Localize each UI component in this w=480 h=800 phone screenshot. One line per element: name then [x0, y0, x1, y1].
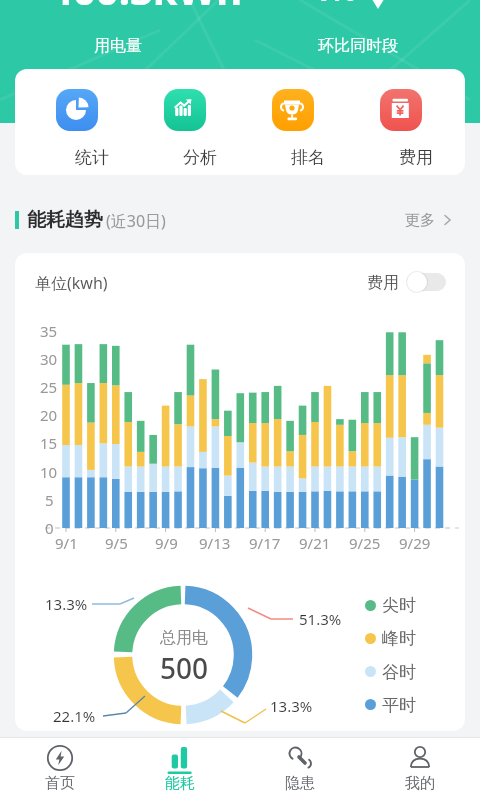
staticText: 我的 — [405, 774, 435, 793]
staticText: 首页 — [45, 774, 75, 793]
staticText: 平时 — [382, 695, 416, 716]
staticText: 9/1 — [55, 533, 78, 553]
button[interactable]: 更多 — [400, 206, 465, 234]
button[interactable] — [407, 273, 446, 291]
button[interactable]: 用电量 — [68, 33, 168, 59]
staticText: 分析 — [183, 147, 217, 168]
staticText: 10 — [40, 462, 58, 482]
button[interactable] — [380, 89, 422, 131]
staticText: 15 — [40, 433, 58, 453]
staticText: 9/29 — [399, 533, 431, 553]
staticText: 峰时 — [382, 628, 416, 649]
staticText: 隐患 — [285, 774, 315, 793]
staticText: 统计 — [75, 147, 109, 168]
staticText: 尖时 — [382, 595, 416, 616]
staticText: 9/5 — [105, 533, 128, 553]
staticText: 25 — [40, 377, 58, 397]
button[interactable] — [272, 89, 314, 131]
staticText: (近30日) — [106, 210, 166, 232]
staticText: 20 — [40, 405, 58, 425]
staticText: 22.1% — [53, 706, 96, 726]
staticText: 13.3% — [270, 696, 313, 716]
staticText: 9/13 — [199, 533, 231, 553]
staticText: 环比同时段 — [318, 36, 398, 56]
staticText: 用电量 — [94, 36, 142, 56]
staticText: 能耗趋势 — [27, 208, 103, 232]
button[interactable] — [164, 89, 206, 131]
staticText: 更多 — [405, 211, 435, 230]
staticText: 13.3% — [45, 594, 88, 614]
staticText: 9/17 — [249, 533, 281, 553]
staticText: 400.3kWh — [50, 0, 243, 6]
button[interactable]: 能耗 — [130, 739, 230, 799]
button[interactable] — [56, 89, 98, 131]
staticText: 总用电 — [160, 628, 208, 648]
staticText: 30 — [40, 349, 58, 369]
staticText: 5 — [45, 490, 54, 510]
button[interactable]: 首页 — [10, 739, 110, 799]
button[interactable]: 我的 — [370, 739, 470, 799]
staticText: 0 — [45, 518, 54, 538]
staticText: 4% — [312, 0, 357, 5]
button[interactable]: 隐患 — [250, 739, 350, 799]
staticText: 51.3% — [299, 609, 342, 629]
staticText: 9/25 — [349, 533, 381, 553]
staticText: 能耗 — [165, 774, 195, 793]
button[interactable]: 环比同时段 — [308, 33, 408, 59]
staticText: 35 — [40, 321, 58, 341]
staticText: 排名 — [291, 147, 325, 168]
staticText: 9/9 — [155, 533, 178, 553]
staticText: 谷时 — [382, 662, 416, 683]
staticText: 费用 — [367, 273, 399, 293]
staticText: 500 — [160, 649, 209, 685]
staticText: 单位(kwh) — [35, 272, 108, 294]
staticText: 9/21 — [299, 533, 331, 553]
staticText: 费用 — [399, 147, 433, 168]
